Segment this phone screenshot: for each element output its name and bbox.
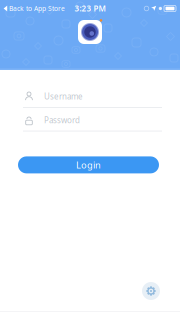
- staticText: Username: [44, 91, 83, 102]
- button[interactable]: Password: [0, 110, 180, 131]
- staticText: 3:23 PM: [74, 3, 105, 14]
- button[interactable]: Settings: [140, 280, 162, 302]
- staticText: Password: [44, 115, 80, 125]
- button[interactable]: Username: [0, 86, 180, 108]
- staticText: Login: [76, 159, 101, 171]
- button[interactable]: Login: [18, 156, 159, 173]
- staticText: Back to App Store: [9, 4, 65, 13]
- button[interactable]: Back to App Store: [1, 4, 65, 13]
